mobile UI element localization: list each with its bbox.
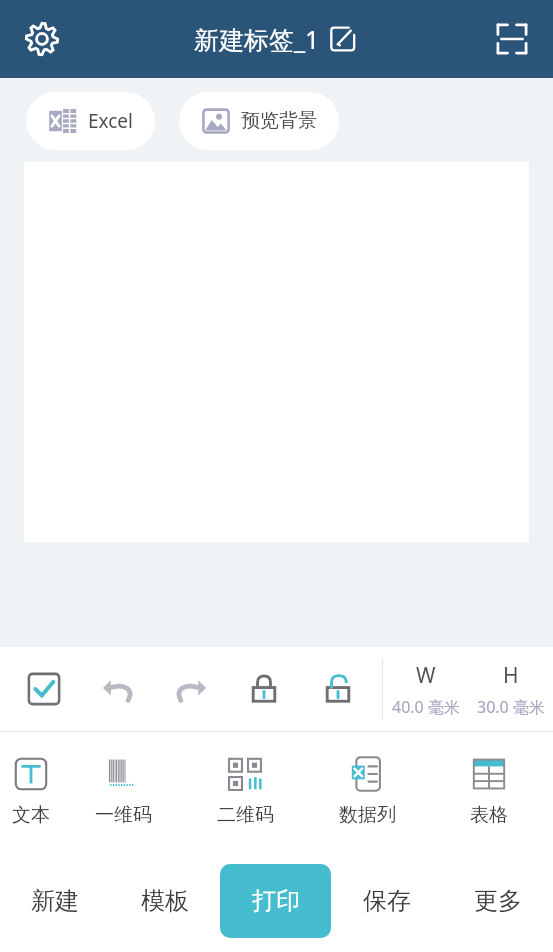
button[interactable]: Settings	[14, 11, 70, 67]
staticText: 模板	[141, 886, 189, 916]
button[interactable]: Redo	[162, 660, 220, 718]
staticText: 数据列	[339, 803, 396, 827]
button[interactable]: Lock	[235, 660, 293, 718]
button[interactable]: 保存	[331, 850, 442, 952]
button[interactable]: 打印	[220, 864, 331, 938]
button[interactable]: 预览背景	[179, 92, 339, 150]
button[interactable]: Rename label	[326, 22, 360, 56]
staticText: 一维码	[95, 803, 152, 827]
staticText: W	[416, 661, 436, 690]
button[interactable]: 模板	[110, 850, 220, 952]
staticText: 新建标签_1	[194, 22, 320, 56]
staticText: H	[503, 661, 519, 690]
button[interactable]: Unlock	[309, 660, 367, 718]
button[interactable]: 新建	[0, 850, 110, 952]
button[interactable]: 更多	[442, 850, 553, 952]
button[interactable]: 表格	[428, 732, 550, 850]
staticText: Excel	[88, 108, 133, 134]
button[interactable]: 二维码	[184, 732, 306, 850]
button[interactable]: Select all	[15, 660, 73, 718]
staticText: 更多	[474, 886, 522, 916]
button[interactable]: Excel	[26, 92, 155, 150]
staticText: 文本	[12, 803, 50, 827]
staticText: 40.0 毫米	[392, 696, 460, 718]
button[interactable]: 数据列	[306, 732, 428, 850]
button[interactable]: 一维码	[62, 732, 184, 850]
staticText: 预览背景	[241, 109, 317, 133]
button[interactable]: Scan	[485, 12, 539, 66]
button[interactable]: W	[383, 647, 468, 731]
staticText: 保存	[363, 886, 411, 916]
button[interactable]: Undo	[89, 660, 147, 718]
staticText: 表格	[470, 803, 508, 827]
staticText: 新建	[31, 886, 79, 916]
staticText: 30.0 毫米	[477, 696, 545, 718]
staticText: 打印	[252, 886, 300, 916]
button[interactable]: 文本	[0, 732, 62, 850]
button[interactable]: H	[468, 647, 553, 731]
staticText: 二维码	[217, 803, 274, 827]
